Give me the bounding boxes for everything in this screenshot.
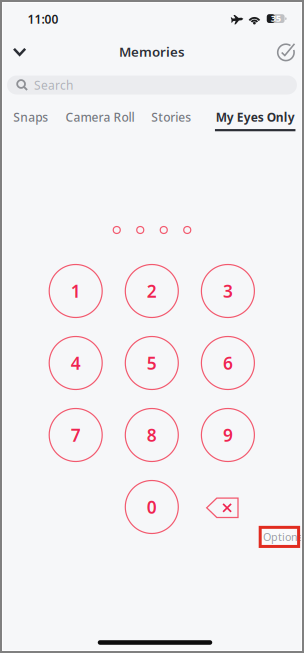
- button[interactable]: Collapse: [2, 37, 38, 67]
- staticText: Memories: [119, 43, 185, 60]
- button[interactable]: 3: [192, 256, 264, 326]
- button[interactable]: 5: [116, 328, 188, 398]
- button[interactable]: Search: [7, 75, 297, 94]
- staticText: 5: [147, 351, 157, 374]
- staticText: 9: [223, 423, 233, 446]
- staticText: 2: [147, 279, 157, 302]
- staticText: 11:00: [27, 11, 58, 27]
- button[interactable]: Snaps: [14, 110, 48, 130]
- staticText: 4: [71, 351, 81, 374]
- button[interactable]: Camera Roll: [64, 110, 136, 130]
- staticText: My Eyes Only: [216, 109, 295, 125]
- button[interactable]: Delete: [192, 478, 252, 538]
- staticText: 0: [147, 495, 157, 518]
- staticText: Snaps: [13, 109, 48, 125]
- button[interactable]: 0: [116, 472, 188, 542]
- staticText: 1: [71, 279, 81, 302]
- button[interactable]: 6: [192, 328, 264, 398]
- button[interactable]: 9: [192, 400, 264, 470]
- button[interactable]: 8: [116, 400, 188, 470]
- button[interactable]: Select: [270, 37, 302, 67]
- button[interactable]: 1: [40, 256, 112, 326]
- button[interactable]: 7: [40, 400, 112, 470]
- staticText: Camera Roll: [65, 109, 134, 125]
- staticText: 8: [147, 423, 157, 446]
- staticText: 7: [71, 423, 81, 446]
- button[interactable]: Options: [262, 529, 297, 545]
- staticText: Options: [263, 530, 303, 544]
- staticText: Search: [34, 77, 73, 93]
- button[interactable]: My Eyes Only: [215, 110, 295, 130]
- staticText: 35: [271, 12, 281, 24]
- button[interactable]: 2: [116, 256, 188, 326]
- button[interactable]: Stories: [151, 110, 191, 130]
- staticText: Stories: [151, 109, 191, 125]
- staticText: 3: [223, 279, 233, 302]
- button[interactable]: 4: [40, 328, 112, 398]
- staticText: 6: [223, 351, 233, 374]
